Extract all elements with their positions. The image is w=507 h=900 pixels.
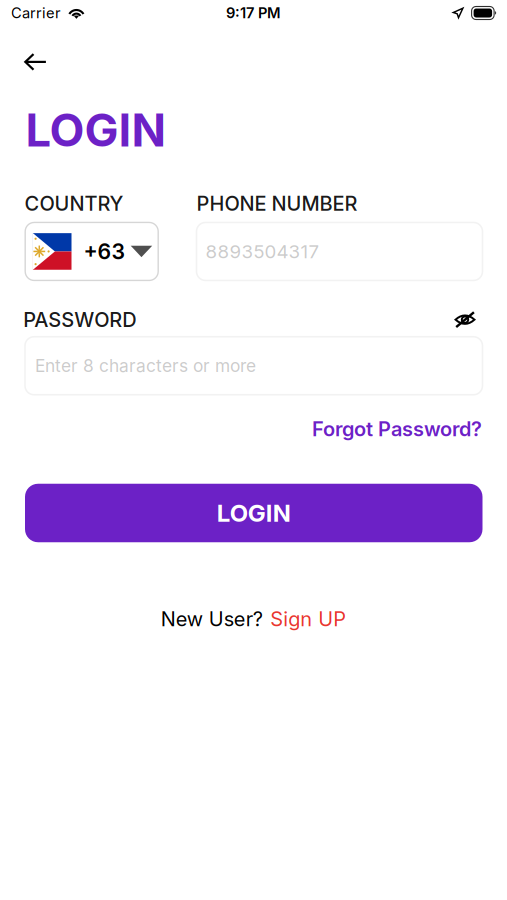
button[interactable]: Forgot Password? <box>312 417 482 441</box>
staticText: New User? <box>161 607 263 631</box>
button[interactable]: Sign UP <box>263 607 346 631</box>
staticText: 8893504317 <box>205 240 319 263</box>
staticText: COUNTRY <box>24 191 123 215</box>
button[interactable]: LOGIN <box>25 484 482 542</box>
staticText: Sign UP <box>270 607 346 631</box>
button[interactable]: 8893504317 <box>196 222 482 280</box>
button[interactable]: Back <box>0 43 61 81</box>
staticText: LOGIN <box>217 498 291 527</box>
button[interactable]: Show password <box>448 307 482 332</box>
button[interactable]: +63 <box>25 222 158 280</box>
staticText: PHONE NUMBER <box>196 191 357 215</box>
staticText: PASSWORD <box>23 307 136 332</box>
staticText: +63 <box>83 238 125 264</box>
staticText: Forgot Password? <box>312 417 482 441</box>
staticText: Carrier <box>11 4 61 22</box>
staticText: LOGIN <box>25 103 166 157</box>
staticText: 9:17 PM <box>226 4 281 22</box>
button[interactable]: Enter 8 characters or more <box>25 337 482 395</box>
staticText: Enter 8 characters or more <box>35 355 256 376</box>
